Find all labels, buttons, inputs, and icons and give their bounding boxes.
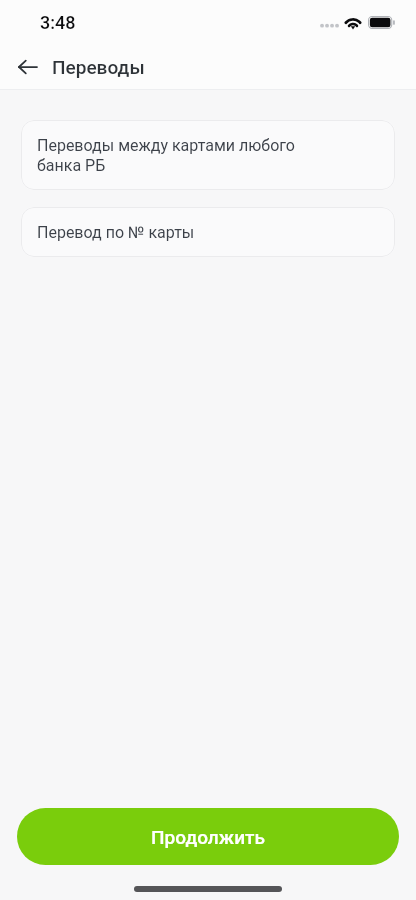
button[interactable]: Продолжить <box>17 808 399 865</box>
button[interactable]: Back <box>8 47 48 87</box>
staticText: Переводы <box>52 56 145 78</box>
staticText: Перевод по № карты <box>37 222 195 242</box>
staticText: Переводы между картами любого банка РБ <box>37 135 295 175</box>
button[interactable]: Перевод по № карты <box>21 207 395 257</box>
staticText: Продолжить <box>151 826 265 848</box>
button[interactable]: Переводы между картами любого банка РБ <box>21 120 395 190</box>
staticText: 3:48 <box>40 12 76 33</box>
